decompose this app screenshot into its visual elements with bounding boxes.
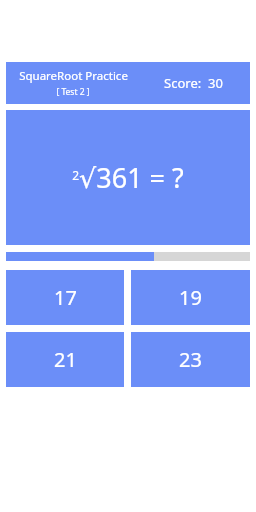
staticText: Score: 30 — [164, 74, 223, 92]
staticText: 21 — [54, 346, 77, 373]
staticText: 17 — [54, 284, 77, 311]
staticText: 2√361 = ? — [72, 159, 184, 196]
staticText: [ Test 2 ] — [56, 86, 90, 98]
button[interactable]: 19 — [131, 270, 250, 325]
button[interactable]: 2√361 = ? — [6, 110, 250, 245]
staticText: SquareRoot Practice — [19, 68, 128, 84]
button[interactable]: 23 — [131, 332, 250, 387]
button[interactable]: SquareRoot Practice — [6, 62, 250, 104]
button[interactable]: 17 — [6, 270, 124, 325]
staticText: 23 — [179, 346, 202, 373]
button[interactable]: 21 — [6, 332, 124, 387]
staticText: 19 — [179, 284, 202, 311]
